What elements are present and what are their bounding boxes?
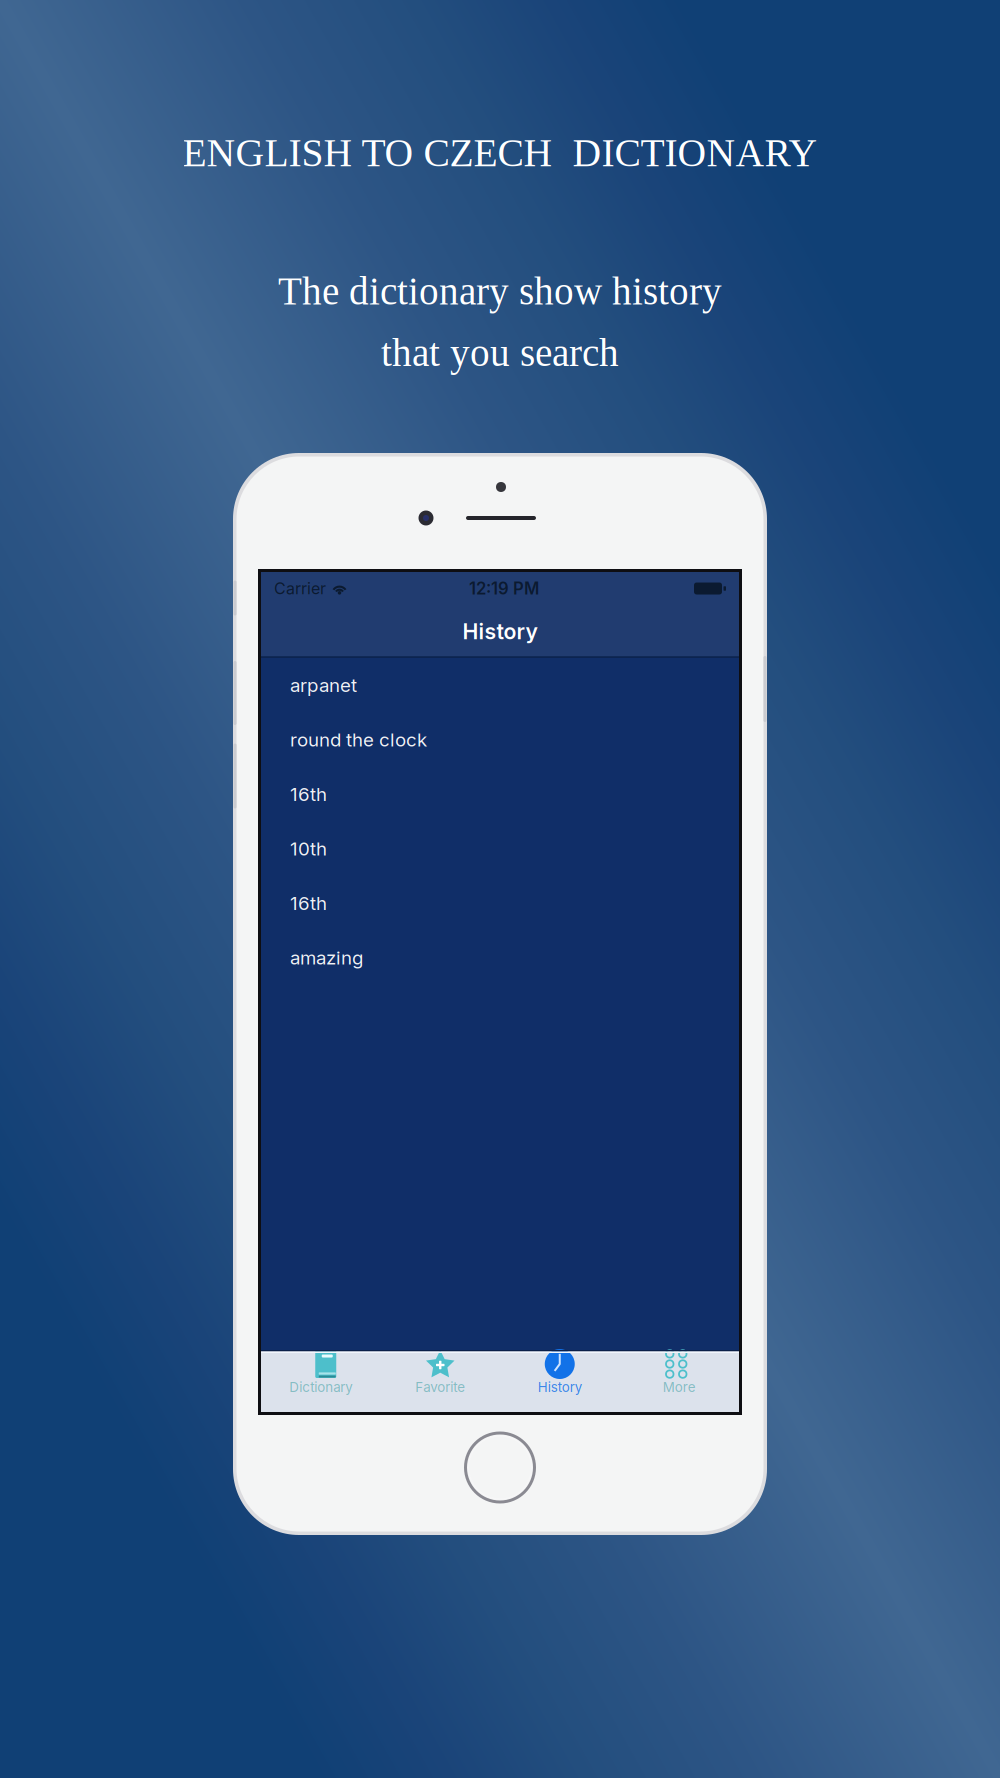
staticText: round the clock xyxy=(290,728,427,751)
staticText: More xyxy=(663,1379,696,1395)
staticText: Favorite xyxy=(415,1379,465,1395)
button[interactable]: amazing xyxy=(261,930,739,985)
staticText: 10th xyxy=(290,837,327,860)
button[interactable]: 16th xyxy=(261,767,739,821)
staticText: amazing xyxy=(290,946,363,969)
button[interactable]: Favorite xyxy=(380,1350,500,1412)
button[interactable]: round the clock xyxy=(261,712,739,767)
button[interactable]: History xyxy=(500,1350,619,1412)
staticText: 16th xyxy=(290,892,327,915)
staticText: 16th xyxy=(290,783,327,806)
staticText: History xyxy=(462,619,537,644)
button[interactable]: Dictionary xyxy=(261,1350,380,1412)
staticText: History xyxy=(538,1379,582,1395)
staticText: Dictionary xyxy=(289,1379,352,1395)
button[interactable]: 10th xyxy=(261,821,739,876)
staticText: ENGLISH TO CZECH DICTIONARY xyxy=(182,131,817,175)
button[interactable]: 16th xyxy=(261,876,739,930)
staticText: 12:19 PM xyxy=(469,578,539,599)
staticText: arpanet xyxy=(290,674,357,697)
staticText: that you search xyxy=(381,331,619,374)
staticText: The dictionary show history xyxy=(278,270,722,313)
staticText: Carrier xyxy=(274,579,326,598)
button[interactable]: More xyxy=(619,1350,739,1412)
button[interactable]: arpanet xyxy=(261,658,739,712)
